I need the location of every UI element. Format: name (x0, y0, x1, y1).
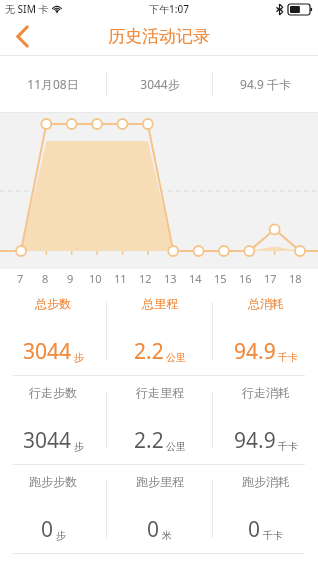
staticText: 0 (248, 515, 261, 544)
staticText: 千卡 (278, 440, 298, 453)
staticText: 总消耗 (248, 296, 284, 311)
staticText: 公里 (166, 440, 186, 453)
staticText: 11月08日 (27, 76, 79, 92)
staticText: 13 (164, 271, 177, 286)
staticText: 2.2 (134, 337, 164, 366)
staticText: 跑步步数 (29, 474, 77, 489)
staticText: 18 (289, 271, 302, 286)
button[interactable]: 跑步里程 (107, 465, 212, 553)
staticText: 14 (189, 271, 202, 286)
staticText: 行走消耗 (242, 385, 290, 400)
button[interactable]: 行走消耗 (213, 376, 318, 464)
staticText: 步 (74, 440, 84, 453)
staticText: 米 (162, 529, 172, 542)
staticText: 94.9 (234, 426, 276, 455)
staticText: 公里 (166, 351, 186, 364)
button[interactable]: 总步数 (0, 287, 106, 375)
button[interactable]: 11月08日 (0, 56, 106, 112)
staticText: 3044步 (140, 76, 180, 92)
button[interactable]: 行走步数 (0, 376, 106, 464)
staticText: 3044 (23, 426, 72, 455)
button[interactable]: 总里程 (107, 287, 212, 375)
staticText: 94.9 (234, 337, 276, 366)
staticText: 8 (42, 271, 49, 286)
button[interactable]: 跑步步数 (0, 465, 106, 553)
staticText: 7 (17, 271, 24, 286)
staticText: 12 (139, 271, 152, 286)
staticText: 跑步消耗 (242, 474, 290, 489)
staticText: 0 (41, 515, 54, 544)
button[interactable]: 总消耗 (213, 287, 318, 375)
staticText: 94.9 千卡 (240, 76, 291, 92)
button[interactable]: Back (0, 18, 44, 55)
staticText: 行走步数 (29, 385, 77, 400)
button[interactable]: 行走里程 (107, 376, 212, 464)
staticText: 15 (214, 271, 227, 286)
staticText: 11 (114, 271, 127, 286)
staticText: 行走里程 (136, 385, 184, 400)
staticText: 跑步里程 (136, 474, 184, 489)
staticText: 16 (239, 271, 252, 286)
staticText: 千卡 (263, 529, 283, 542)
staticText: 历史活动记录 (108, 26, 210, 47)
button[interactable]: 跑步消耗 (213, 465, 318, 553)
staticText: 3044 (23, 337, 72, 366)
button[interactable]: 3044步 (107, 56, 212, 112)
staticText: 下午1:07 (149, 2, 189, 16)
staticText: 17 (264, 271, 277, 286)
staticText: 千卡 (278, 351, 298, 364)
staticText: 步 (56, 529, 66, 542)
staticText: 0 (147, 515, 160, 544)
staticText: 10 (89, 271, 102, 286)
staticText: 2.2 (134, 426, 164, 455)
staticText: 总里程 (142, 296, 178, 311)
staticText: 9 (67, 271, 74, 286)
button[interactable]: 94.9 千卡 (213, 56, 318, 112)
staticText: 无 SIM 卡 (5, 2, 49, 16)
staticText: 步 (74, 351, 84, 364)
staticText: 总步数 (35, 296, 71, 311)
